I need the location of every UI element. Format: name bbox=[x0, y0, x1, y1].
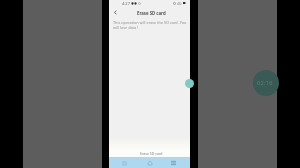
button[interactable]: Menu bbox=[168, 158, 178, 168]
staticText: Erase SD card bbox=[137, 10, 166, 16]
staticText: This operation will erase the SD card. Y… bbox=[113, 20, 187, 30]
button[interactable]: Action bbox=[185, 79, 194, 88]
staticText: 02:16 bbox=[257, 79, 273, 87]
button[interactable]: Home bbox=[145, 158, 155, 168]
button[interactable]: Recents bbox=[119, 158, 129, 168]
staticText: 4G bbox=[177, 1, 182, 6]
button[interactable]: Next screenshot bbox=[198, 0, 277, 168]
staticText: Erase SD card bbox=[140, 151, 163, 156]
staticText: 4:27 bbox=[122, 1, 130, 6]
button[interactable]: Back bbox=[111, 8, 120, 17]
button[interactable]: Erase SD card bbox=[109, 146, 190, 157]
